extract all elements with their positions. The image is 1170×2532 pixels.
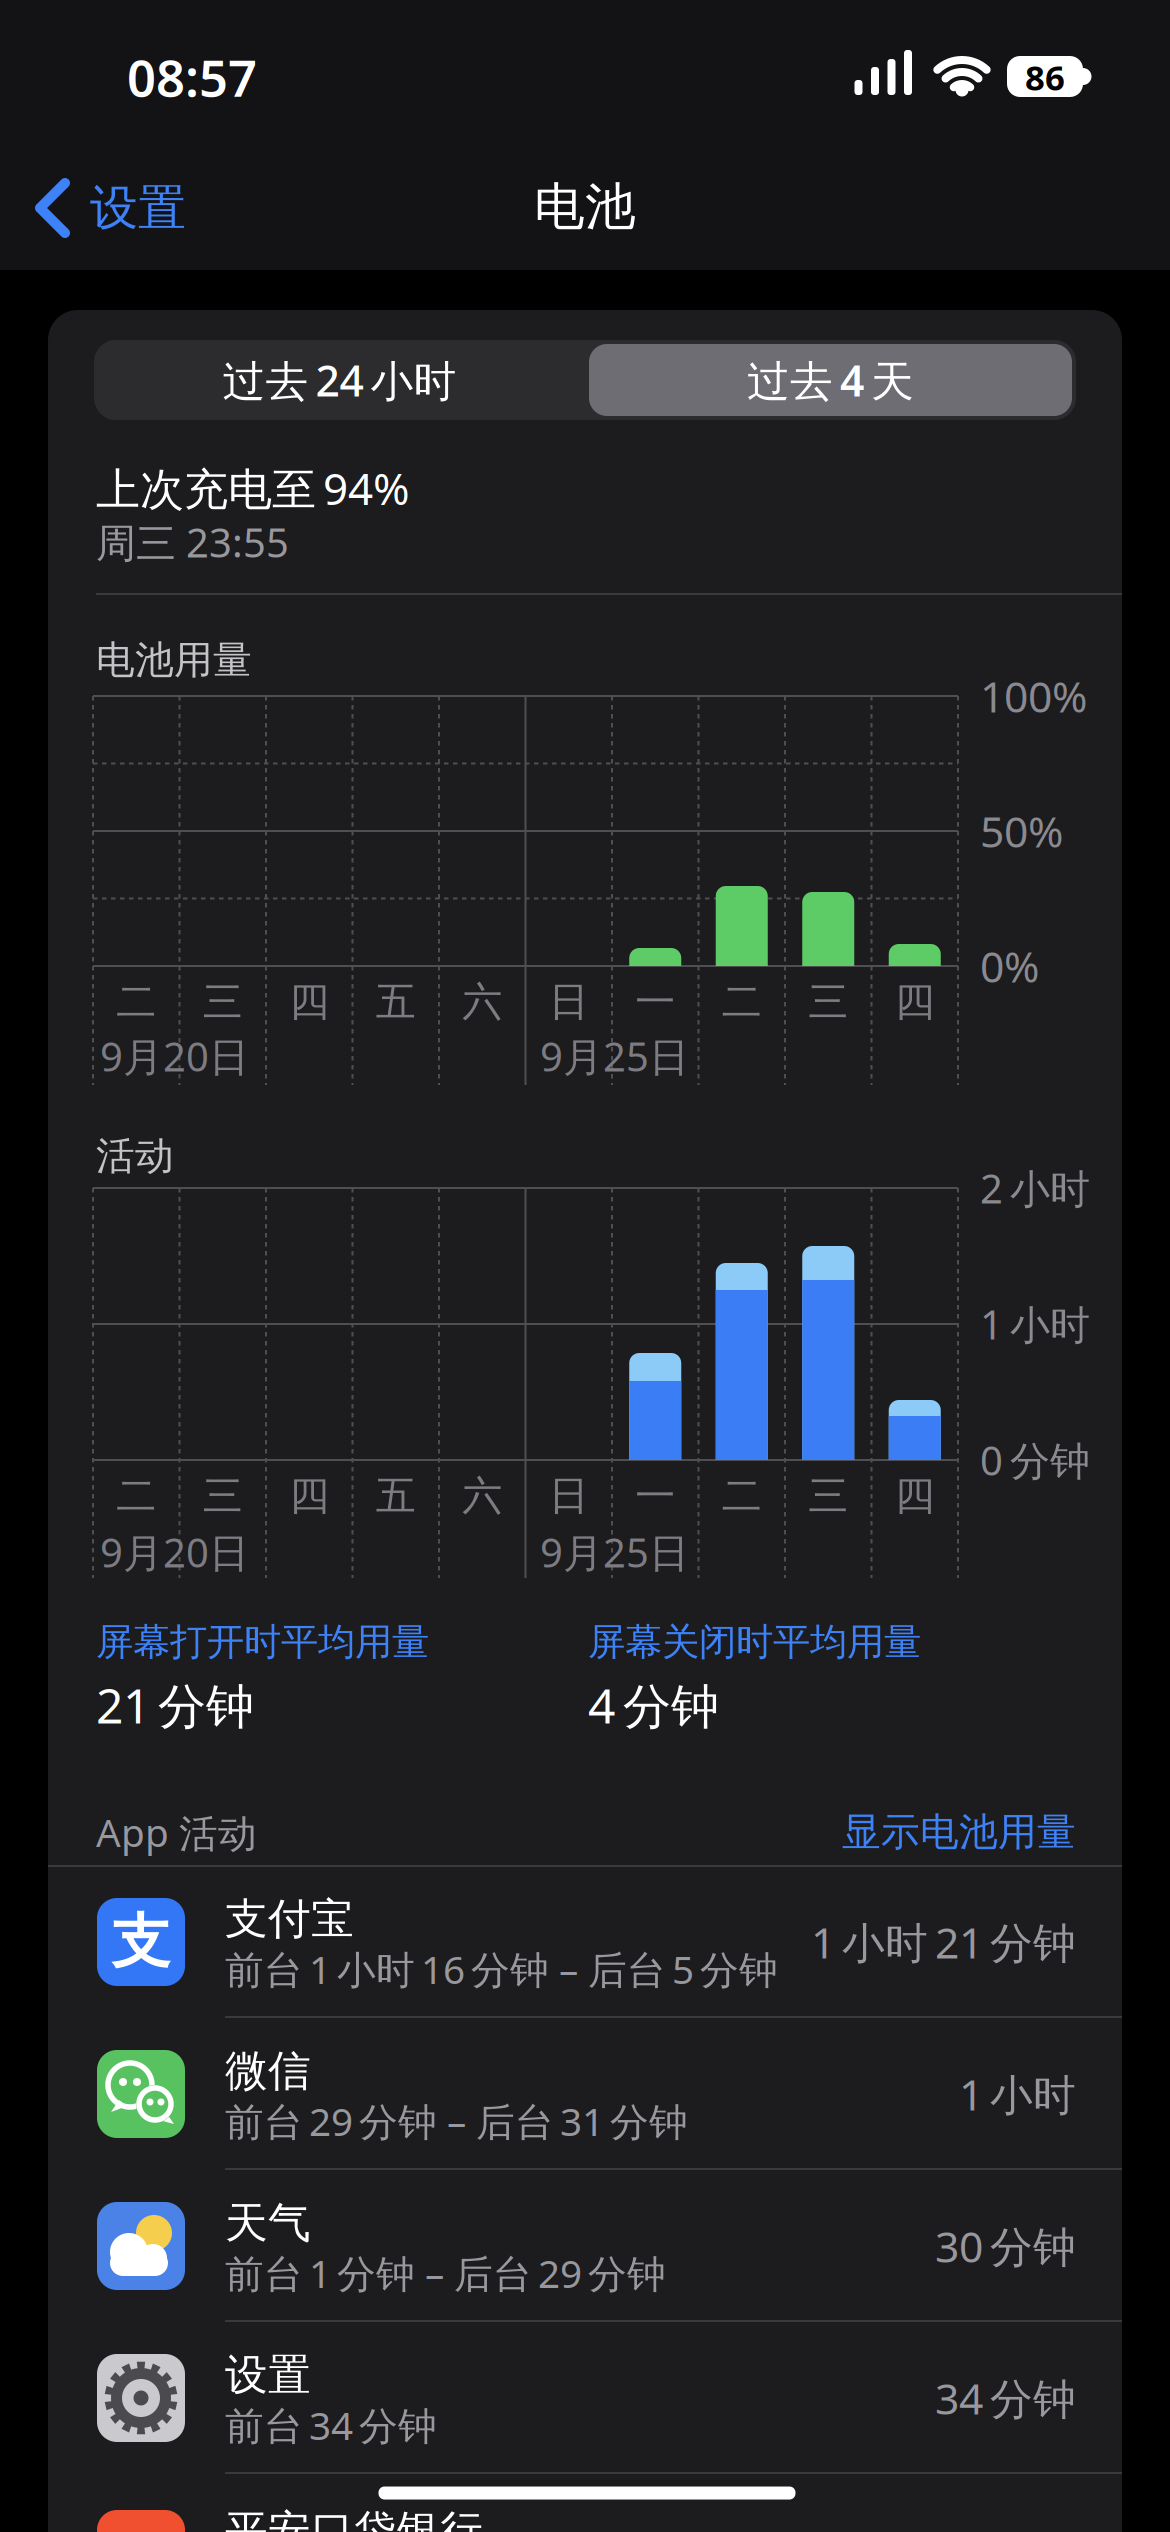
button[interactable]: 平安: [48, 2478, 1122, 2532]
staticText: 9月25日: [540, 1029, 689, 1082]
staticText: 电池用量: [96, 636, 252, 684]
staticText: 六: [462, 977, 502, 1026]
staticText: 30 分钟: [935, 2218, 1076, 2274]
staticText: 屏幕打开时平均用量: [96, 1619, 429, 1665]
staticText: 支: [111, 1906, 170, 1978]
button[interactable]: 过去 24 小时: [94, 340, 585, 420]
staticText: 86: [1025, 54, 1065, 100]
staticText: 周三 23:55: [96, 515, 289, 568]
staticText: 08:57: [127, 43, 257, 111]
staticText: 前台 1 分钟 – 后台 29 分钟: [225, 2247, 666, 2299]
staticText: 三: [808, 1471, 848, 1520]
button[interactable]: 微信: [48, 2018, 1122, 2170]
staticText: 一: [635, 977, 675, 1026]
staticText: 4 分钟: [588, 1673, 719, 1737]
staticText: 9月20日: [100, 1525, 249, 1578]
staticText: 显示电池用量: [842, 1808, 1076, 1856]
staticText: 一: [635, 1471, 675, 1520]
button[interactable]: 设置: [36, 178, 186, 237]
button[interactable]: 过去 4 天: [585, 340, 1076, 420]
staticText: 设置: [225, 2349, 311, 2401]
staticText: 过去 4 天: [747, 352, 914, 408]
staticText: 四: [895, 1471, 935, 1520]
button[interactable]: 显示电池用量: [576, 1808, 1076, 1856]
staticText: 六: [462, 1471, 502, 1520]
staticText: 9月25日: [540, 1525, 689, 1578]
staticText: 二: [116, 977, 156, 1026]
staticText: 设置: [90, 178, 186, 237]
staticText: 1 小时 21 分钟: [811, 1914, 1076, 1970]
staticText: 前台 1 小时 16 分钟 – 后台 5 分钟: [225, 1943, 778, 1995]
staticText: 四: [289, 977, 329, 1026]
button[interactable]: 支: [48, 1866, 1122, 2018]
staticText: 天气: [225, 2197, 311, 2249]
staticText: 上次充电至 94%: [96, 459, 410, 517]
staticText: 微信: [225, 2045, 311, 2097]
staticText: 1 小时: [959, 2066, 1076, 2122]
staticText: 三: [203, 1471, 243, 1520]
staticText: 日: [549, 977, 589, 1026]
staticText: 屏幕关闭时平均用量: [588, 1619, 921, 1665]
staticText: 五: [376, 977, 416, 1026]
staticText: 前台 34 分钟: [225, 2399, 437, 2451]
button[interactable]: 天气: [48, 2170, 1122, 2322]
staticText: 三: [203, 977, 243, 1026]
staticText: 二: [116, 1471, 156, 1520]
staticText: 四: [289, 1471, 329, 1520]
staticText: 活动: [96, 1132, 174, 1180]
staticText: 二: [722, 977, 762, 1026]
staticText: 0%: [980, 938, 1039, 994]
staticText: 9月20日: [100, 1029, 249, 1082]
staticText: 过去 24 小时: [222, 352, 456, 408]
staticText: 0 分钟: [980, 1433, 1090, 1486]
staticText: App 活动: [96, 1806, 257, 1858]
staticText: 支付宝: [225, 1893, 354, 1945]
staticText: 34 分钟: [935, 2370, 1076, 2426]
staticText: 四: [895, 977, 935, 1026]
staticText: 2 小时: [980, 1161, 1090, 1214]
staticText: 100%: [980, 668, 1087, 724]
staticText: 1 小时: [980, 1297, 1090, 1350]
button[interactable]: 设置: [48, 2322, 1122, 2474]
staticText: 二: [722, 1471, 762, 1520]
staticText: 三: [808, 977, 848, 1026]
staticText: 电池: [534, 176, 636, 238]
staticText: 平安口袋银行: [225, 2505, 483, 2532]
staticText: 前台 29 分钟 – 后台 31 分钟: [225, 2095, 688, 2147]
staticText: 21 分钟: [96, 1673, 254, 1737]
staticText: 50%: [980, 803, 1063, 859]
staticText: 五: [376, 1471, 416, 1520]
staticText: 日: [549, 1471, 589, 1520]
